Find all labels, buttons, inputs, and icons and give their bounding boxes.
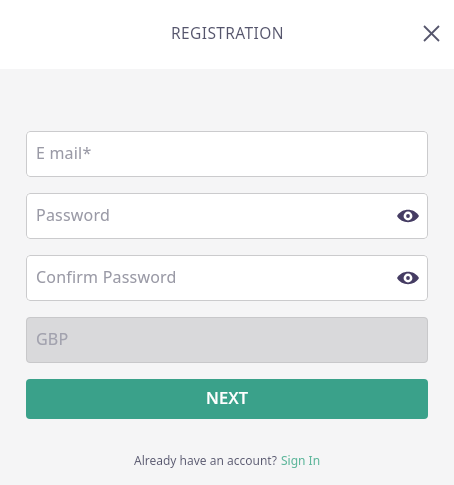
button[interactable]: E mail* bbox=[26, 131, 428, 177]
button[interactable]: Confirm Password bbox=[26, 255, 428, 301]
staticText: REGISTRATION bbox=[171, 22, 284, 43]
staticText: Password bbox=[36, 204, 110, 226]
button[interactable]: Show password bbox=[394, 202, 422, 230]
button[interactable]: GBP bbox=[26, 317, 428, 363]
staticText: GBP bbox=[36, 328, 69, 350]
staticText: NEXT bbox=[206, 386, 249, 408]
button[interactable]: Already have an account? bbox=[134, 452, 321, 468]
button[interactable]: Show password bbox=[394, 264, 422, 292]
staticText: E mail* bbox=[36, 142, 92, 164]
staticText: Confirm Password bbox=[36, 266, 177, 288]
staticText: Sign In bbox=[281, 452, 321, 468]
staticText: Already have an account? bbox=[134, 452, 281, 468]
button[interactable]: NEXT bbox=[26, 379, 428, 419]
button[interactable]: Close bbox=[411, 13, 451, 53]
button[interactable]: Password bbox=[26, 193, 428, 239]
